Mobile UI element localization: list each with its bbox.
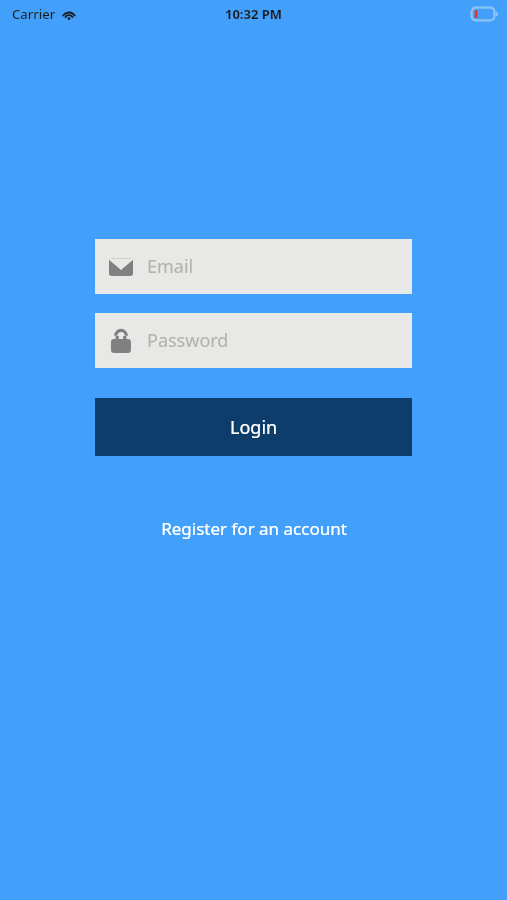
staticText: Carrier [12,5,56,23]
staticText: Register for an account [161,517,347,540]
staticText: Password [147,328,229,353]
staticText: 10:32 PM [225,5,283,23]
button[interactable]: Login [95,398,412,456]
other: Email [95,258,147,276]
button[interactable]: Password [95,313,412,368]
button[interactable]: Register for an account [0,517,507,540]
button[interactable]: Email [95,239,412,294]
other: Password [95,329,147,353]
staticText: Email [147,254,194,279]
staticText: Login [230,415,278,440]
